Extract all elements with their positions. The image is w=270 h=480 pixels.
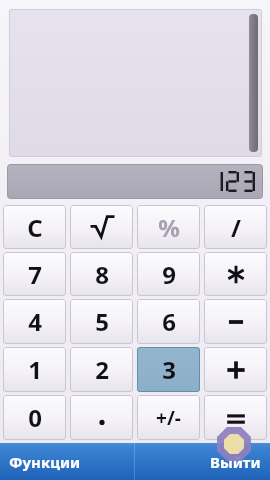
staticText: 5 (95, 305, 109, 338)
button[interactable]: 8 (70, 252, 133, 296)
button[interactable]: C (3, 205, 66, 249)
button[interactable]: Функции (0, 443, 134, 480)
staticText: 3 (162, 353, 176, 386)
staticText: / (231, 211, 241, 244)
button[interactable]: 9 (137, 252, 200, 296)
staticText: 0 (28, 401, 42, 434)
staticText: +/- (156, 405, 181, 431)
button[interactable]: = (204, 395, 267, 440)
staticText: 8 (95, 258, 109, 291)
button[interactable] (70, 395, 133, 440)
button[interactable]: √ (70, 205, 133, 249)
button[interactable] (204, 347, 267, 392)
button[interactable] (9, 9, 262, 157)
staticText: 9 (162, 258, 176, 291)
button[interactable]: 6 (137, 299, 200, 344)
staticText: C (27, 211, 43, 244)
button[interactable]: +/- (137, 395, 200, 440)
staticText: 7 (28, 258, 42, 291)
button[interactable]: 3 (137, 347, 200, 392)
button[interactable]: 0 (3, 395, 66, 440)
button[interactable]: / (204, 205, 267, 249)
staticText: 2 (95, 353, 109, 386)
button[interactable] (204, 252, 267, 296)
staticText: 6 (162, 305, 176, 338)
staticText: Выйти (210, 452, 261, 472)
button[interactable]: Выйти (135, 443, 270, 480)
button[interactable] (7, 164, 263, 199)
button[interactable]: 4 (3, 299, 66, 344)
button[interactable] (204, 299, 267, 344)
button[interactable]: 2 (70, 347, 133, 392)
staticText: Функции (9, 452, 81, 472)
button[interactable]: 5 (70, 299, 133, 344)
button[interactable]: 1 (3, 347, 66, 392)
staticText: % (158, 211, 180, 244)
staticText: 4 (28, 305, 42, 338)
button[interactable]: 7 (3, 252, 66, 296)
button[interactable]: % (137, 205, 200, 249)
other: Logo watermark (214, 424, 254, 464)
staticText: 1 (28, 353, 42, 386)
